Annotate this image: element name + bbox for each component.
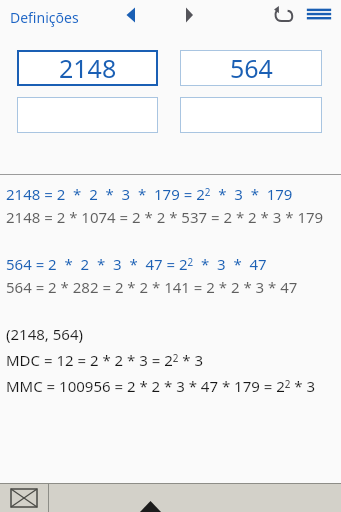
button[interactable]: Definições <box>6 3 83 32</box>
button[interactable] <box>17 97 158 133</box>
staticText: MDC = 12 = 2 * 2 * 3 = 22 * 3 <box>6 350 204 370</box>
button[interactable] <box>180 97 322 133</box>
staticText: (2148, 564) <box>6 324 83 344</box>
staticText: Definições <box>10 8 79 27</box>
staticText: 2148 = 2 * 2 * 3 * 179 = 22 * 3 * 179 <box>6 184 293 204</box>
button[interactable]: Seguinte <box>174 0 204 30</box>
button[interactable]: Anterior <box>116 0 146 30</box>
button[interactable]: 564 <box>180 50 322 86</box>
staticText: MMC = 100956 = 2 * 2 * 3 * 47 * 179 = 22… <box>6 376 316 396</box>
button[interactable]: Expandir <box>132 490 168 512</box>
staticText: 564 = 2 * 282 = 2 * 2 * 141 = 2 * 2 * 3 … <box>6 277 298 297</box>
staticText: 564 = 2 * 2 * 3 * 47 = 22 * 3 * 47 <box>6 254 267 274</box>
button[interactable]: Anular <box>269 0 299 30</box>
button[interactable]: Email <box>0 484 48 512</box>
staticText: 2148 = 2 * 1074 = 2 * 2 * 537 = 2 * 2 * … <box>6 207 324 227</box>
button[interactable]: 2148 <box>17 50 158 86</box>
button[interactable]: Menu <box>303 0 335 31</box>
staticText: 2148 <box>59 51 117 85</box>
staticText: 564 <box>230 51 273 85</box>
